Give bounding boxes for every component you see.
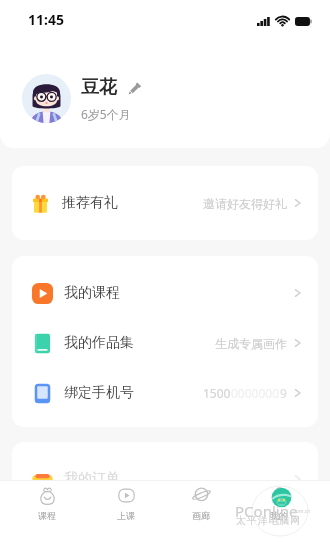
staticText: 画廊 [192, 510, 210, 521]
staticText: 9 [280, 385, 287, 401]
button[interactable]: 课程 [10, 480, 84, 550]
staticText: 我的课程 [64, 284, 120, 302]
staticText: 绑定手机号 [64, 384, 134, 402]
staticText: 豆花 [81, 76, 117, 99]
button[interactable]: 推荐有礼 [12, 166, 318, 240]
staticText: .com.cn [292, 508, 311, 515]
button[interactable]: 我的课程 [12, 268, 318, 318]
button[interactable]: 我的订单 [12, 454, 318, 504]
staticText: 我的作品集 [64, 334, 134, 352]
staticText: 我的订单 [64, 470, 120, 488]
button[interactable]: 画廊 [164, 480, 238, 550]
staticText: 上课 [117, 510, 135, 521]
staticText: PConline [235, 501, 298, 521]
staticText: 太平洋电脑网 [236, 514, 301, 527]
staticText: 1500 [203, 385, 231, 401]
staticText: 推荐有礼 [62, 194, 118, 212]
staticText: 11:45 [28, 10, 64, 29]
button[interactable]: 我的作品集 [12, 318, 318, 368]
button[interactable]: 绑定手机号 [12, 368, 318, 418]
staticText: 生成专属画作 [215, 336, 287, 351]
staticText: 邀请好友得好礼 [203, 196, 287, 211]
staticText: 我的 [270, 510, 288, 521]
button[interactable]: Edit name [128, 81, 142, 95]
button[interactable]: 上课 [89, 480, 163, 550]
staticText: 0000000 [231, 385, 280, 401]
staticText: 6岁5个月 [81, 106, 131, 122]
staticText: 课程 [38, 510, 56, 521]
button[interactable]: 我的 [242, 480, 316, 550]
